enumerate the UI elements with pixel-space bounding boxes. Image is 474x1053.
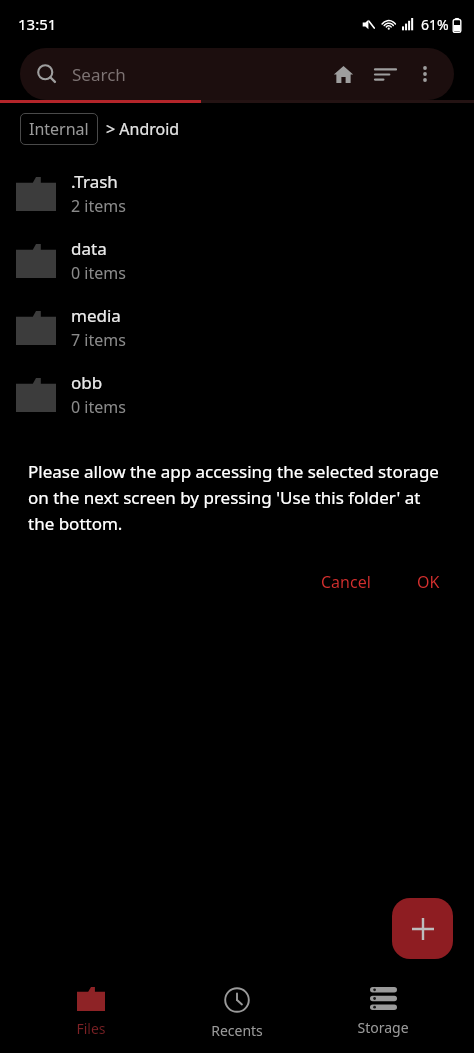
staticText: Internal [29, 118, 89, 140]
staticText: Cancel [321, 571, 371, 593]
staticText: obb [71, 371, 103, 394]
staticText: 7 items [71, 329, 126, 351]
button[interactable]: Search [20, 48, 454, 100]
staticText: 61% [421, 15, 449, 34]
staticText: .Trash [71, 170, 118, 193]
staticText: Search [72, 63, 126, 86]
staticText: Files [76, 1019, 106, 1038]
button[interactable]: Add [392, 898, 453, 959]
button[interactable]: > Android [106, 113, 180, 145]
staticText: 13:51 [18, 14, 57, 34]
button[interactable]: data [0, 227, 474, 294]
staticText: Please allow the app accessing the selec… [28, 460, 448, 535]
staticText: 0 items [71, 396, 126, 418]
button[interactable]: OK [407, 563, 450, 601]
button[interactable]: obb [0, 361, 474, 428]
staticText: Storage [357, 1018, 409, 1037]
button[interactable]: Home [326, 57, 360, 91]
staticText: media [71, 304, 121, 327]
button[interactable]: More options [408, 57, 442, 91]
button[interactable]: Internal [20, 113, 98, 145]
button[interactable]: Storage [328, 973, 438, 1053]
staticText: 0 items [71, 262, 126, 284]
button[interactable]: media [0, 294, 474, 361]
staticText: > Android [106, 118, 180, 140]
button[interactable]: Files [36, 973, 146, 1053]
staticText: OK [417, 571, 440, 593]
button[interactable]: .Trash [0, 160, 474, 227]
button[interactable]: Cancel [311, 563, 381, 601]
button[interactable]: Recents [182, 973, 292, 1053]
button[interactable]: Sort [368, 57, 402, 91]
staticText: data [71, 237, 107, 260]
staticText: Recents [211, 1021, 263, 1040]
other: Search [36, 63, 58, 85]
staticText: 2 items [71, 195, 126, 217]
